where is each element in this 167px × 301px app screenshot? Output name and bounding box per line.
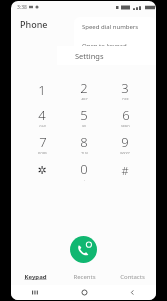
staticText: 9 <box>121 133 129 151</box>
staticText: 4 <box>38 106 46 124</box>
staticText: Contacts <box>120 273 145 281</box>
staticText: + <box>83 178 86 181</box>
button[interactable]: Open to keypad <box>74 36 156 55</box>
button[interactable]: 1 <box>25 79 59 100</box>
staticText: 7 <box>39 133 47 151</box>
button[interactable]: Speed dial numbers <box>74 17 156 36</box>
staticText: JKL <box>82 124 87 127</box>
staticText: MNO <box>121 124 130 127</box>
button[interactable]: Settings <box>57 46 156 65</box>
staticText: 8 <box>80 133 88 151</box>
button[interactable]: Contacts <box>108 269 156 285</box>
staticText: ABC <box>81 97 88 100</box>
staticText: Speed dial numbers <box>82 23 139 31</box>
staticText: 3:38 <box>17 4 27 11</box>
button[interactable]: 9 <box>108 133 142 154</box>
staticText: Recents <box>73 273 96 281</box>
staticText: 2 <box>80 79 88 97</box>
staticText: 5 <box>80 106 88 124</box>
staticText: 6 <box>122 106 130 124</box>
staticText: WXYZ <box>120 151 130 154</box>
staticText: DEF <box>122 97 129 100</box>
button[interactable]: Recents <box>60 269 108 285</box>
staticText: TUV <box>81 151 88 154</box>
button[interactable]: Home <box>60 285 108 300</box>
button[interactable]: 7 <box>25 133 59 154</box>
button[interactable]: 3 <box>108 79 142 100</box>
staticText: # <box>121 163 129 178</box>
button[interactable]: 8 <box>67 133 101 154</box>
button[interactable]: Keypad <box>11 269 60 285</box>
staticText: 3 <box>121 79 129 97</box>
button[interactable]: Call <box>70 236 97 263</box>
staticText: PQRS <box>38 151 47 154</box>
button[interactable]: 0 <box>67 160 101 181</box>
staticText: ✲ <box>37 164 47 177</box>
button[interactable]: 4 <box>25 106 59 127</box>
button[interactable]: 5 <box>67 106 101 127</box>
staticText: Open to keypad <box>82 42 127 50</box>
staticText: Phone <box>20 18 48 30</box>
button[interactable]: Recent apps <box>11 285 60 300</box>
button[interactable]: 6 <box>108 106 142 127</box>
button[interactable]: Back <box>108 285 156 300</box>
button[interactable]: 2 <box>67 79 101 100</box>
staticText: GHI <box>39 124 46 127</box>
button[interactable]: ✲ <box>25 160 59 181</box>
staticText: Keypad <box>24 273 47 281</box>
staticText: 0 <box>80 160 88 178</box>
staticText: 1 <box>38 81 46 99</box>
staticText: Settings <box>75 51 104 61</box>
button[interactable]: # <box>108 160 142 181</box>
